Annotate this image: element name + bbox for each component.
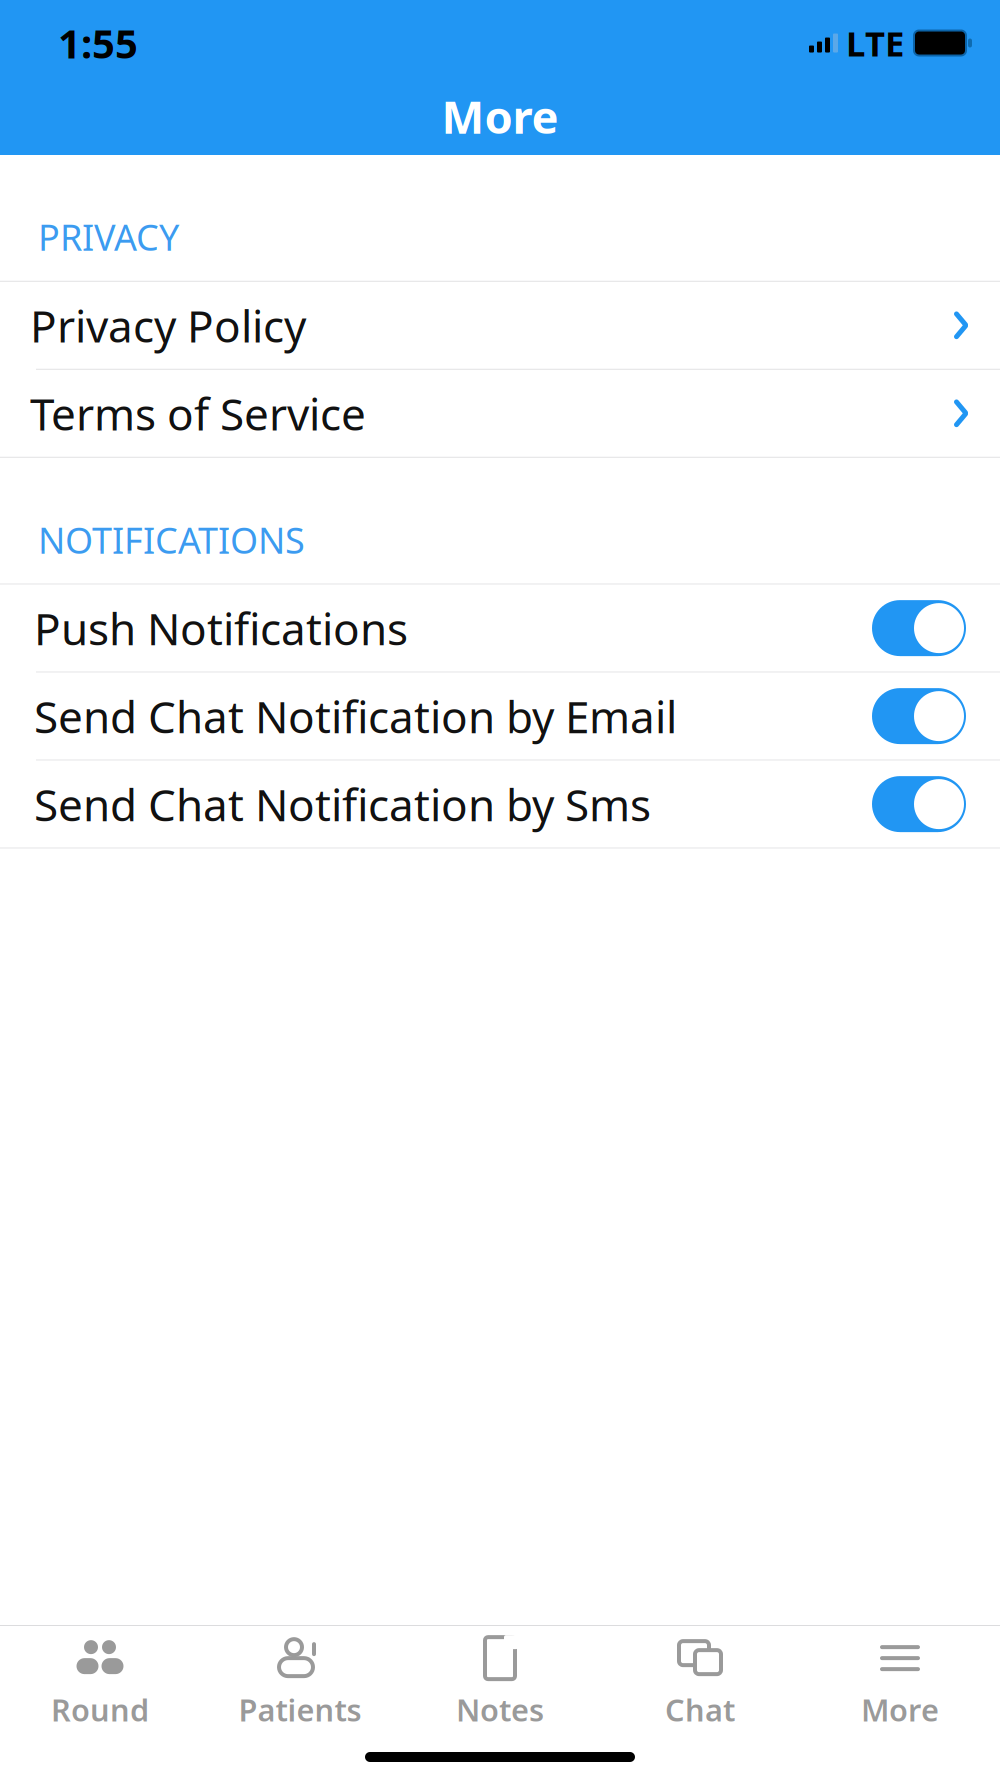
- staticText: Send Chat Notification by Email: [34, 687, 677, 745]
- staticText: 1:55: [58, 16, 138, 69]
- staticText: LTE: [846, 20, 904, 66]
- staticText: More: [861, 1689, 939, 1730]
- staticText: More: [441, 86, 558, 146]
- staticText: Terms of Service: [30, 384, 366, 442]
- staticText: Privacy Policy: [30, 296, 306, 354]
- button[interactable]: Round: [0, 1620, 200, 1736]
- staticText: Patients: [238, 1689, 361, 1730]
- button[interactable]: Patients: [200, 1620, 400, 1736]
- staticText: Chat: [665, 1689, 735, 1730]
- staticText: Notes: [456, 1689, 544, 1730]
- button[interactable]: Privacy Policy: [0, 282, 1000, 369]
- staticText: PRIVACY: [38, 213, 179, 261]
- staticText: Send Chat Notification by Sms: [34, 775, 651, 833]
- button[interactable]: More: [800, 1620, 1000, 1736]
- button[interactable]: Push Notifications: [0, 585, 1000, 672]
- button[interactable]: Notes: [400, 1620, 600, 1736]
- button[interactable]: Chat: [600, 1620, 800, 1736]
- button[interactable]: Send Chat Notification by Sms: [0, 761, 1000, 848]
- staticText: Round: [51, 1689, 149, 1730]
- staticText: Push Notifications: [34, 599, 408, 657]
- button[interactable]: Terms of Service: [0, 370, 1000, 457]
- button[interactable]: Send Chat Notification by Email: [0, 673, 1000, 760]
- staticText: NOTIFICATIONS: [38, 516, 305, 564]
